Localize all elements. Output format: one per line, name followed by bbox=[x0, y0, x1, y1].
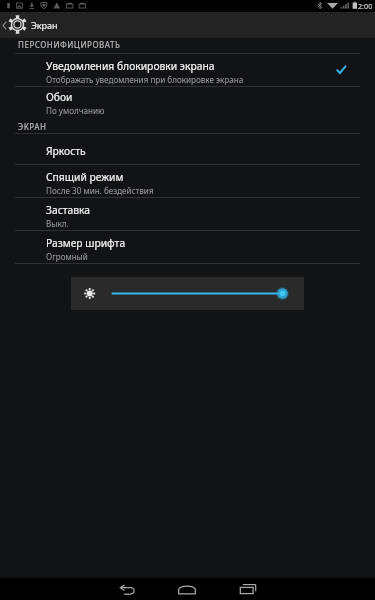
button[interactable]: Главный экран bbox=[157, 578, 217, 600]
button[interactable]: Яркость bbox=[0, 133, 375, 164]
staticText: Огромный bbox=[46, 251, 88, 262]
staticText: Заставка bbox=[46, 203, 91, 217]
staticText: Отображать уведомления при блокировке эк… bbox=[46, 74, 244, 85]
staticText: Уведомления блокировки экрана bbox=[46, 59, 215, 73]
staticText: После 30 мин. бездействия bbox=[46, 185, 154, 196]
staticText: Обои bbox=[46, 90, 73, 104]
button[interactable]: Размер шрифта bbox=[0, 230, 375, 263]
staticText: Экран bbox=[31, 19, 58, 31]
staticText: Выкл. bbox=[46, 218, 69, 229]
staticText: ЭКРАН bbox=[18, 121, 47, 132]
button[interactable]: Уведомления блокировки экрана bbox=[0, 53, 375, 86]
staticText: По умолчанию bbox=[46, 105, 105, 116]
button[interactable]: Заставка bbox=[0, 197, 375, 230]
staticText: 2:00 bbox=[358, 1, 373, 11]
button[interactable]: Недавние приложения bbox=[218, 578, 278, 600]
button[interactable]: Назад bbox=[97, 578, 157, 600]
button[interactable]: Настройки — Экран, назад bbox=[0, 12, 375, 38]
staticText: Спящий режим bbox=[46, 170, 124, 184]
button[interactable]: Спящий режим bbox=[0, 164, 375, 197]
staticText: ПЕРСОНИФИЦИРОВАТЬ bbox=[18, 39, 121, 50]
staticText: Яркость bbox=[46, 144, 86, 158]
button[interactable]: Обои bbox=[0, 86, 375, 115]
staticText: Размер шрифта bbox=[46, 236, 126, 250]
